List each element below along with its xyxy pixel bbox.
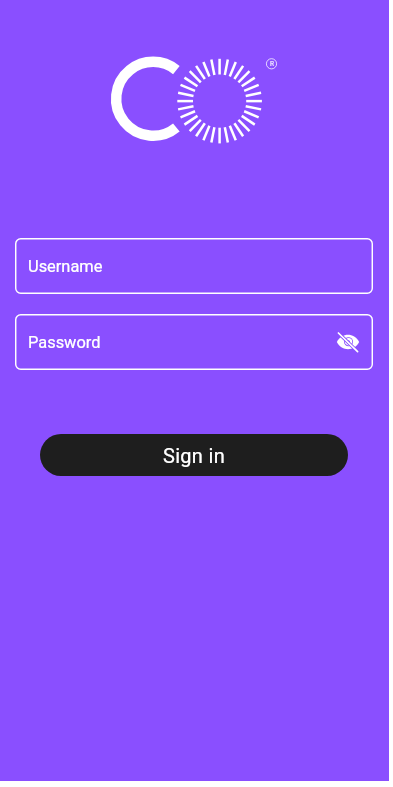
staticText: R [270,60,275,68]
button[interactable]: Username [15,238,373,294]
staticText: Sign in [163,444,225,467]
button[interactable]: Sign in [40,434,348,476]
button[interactable]: Show password [335,329,361,355]
staticText: Username [28,257,103,276]
staticText: Password [28,333,101,352]
button[interactable]: Password [15,314,373,370]
